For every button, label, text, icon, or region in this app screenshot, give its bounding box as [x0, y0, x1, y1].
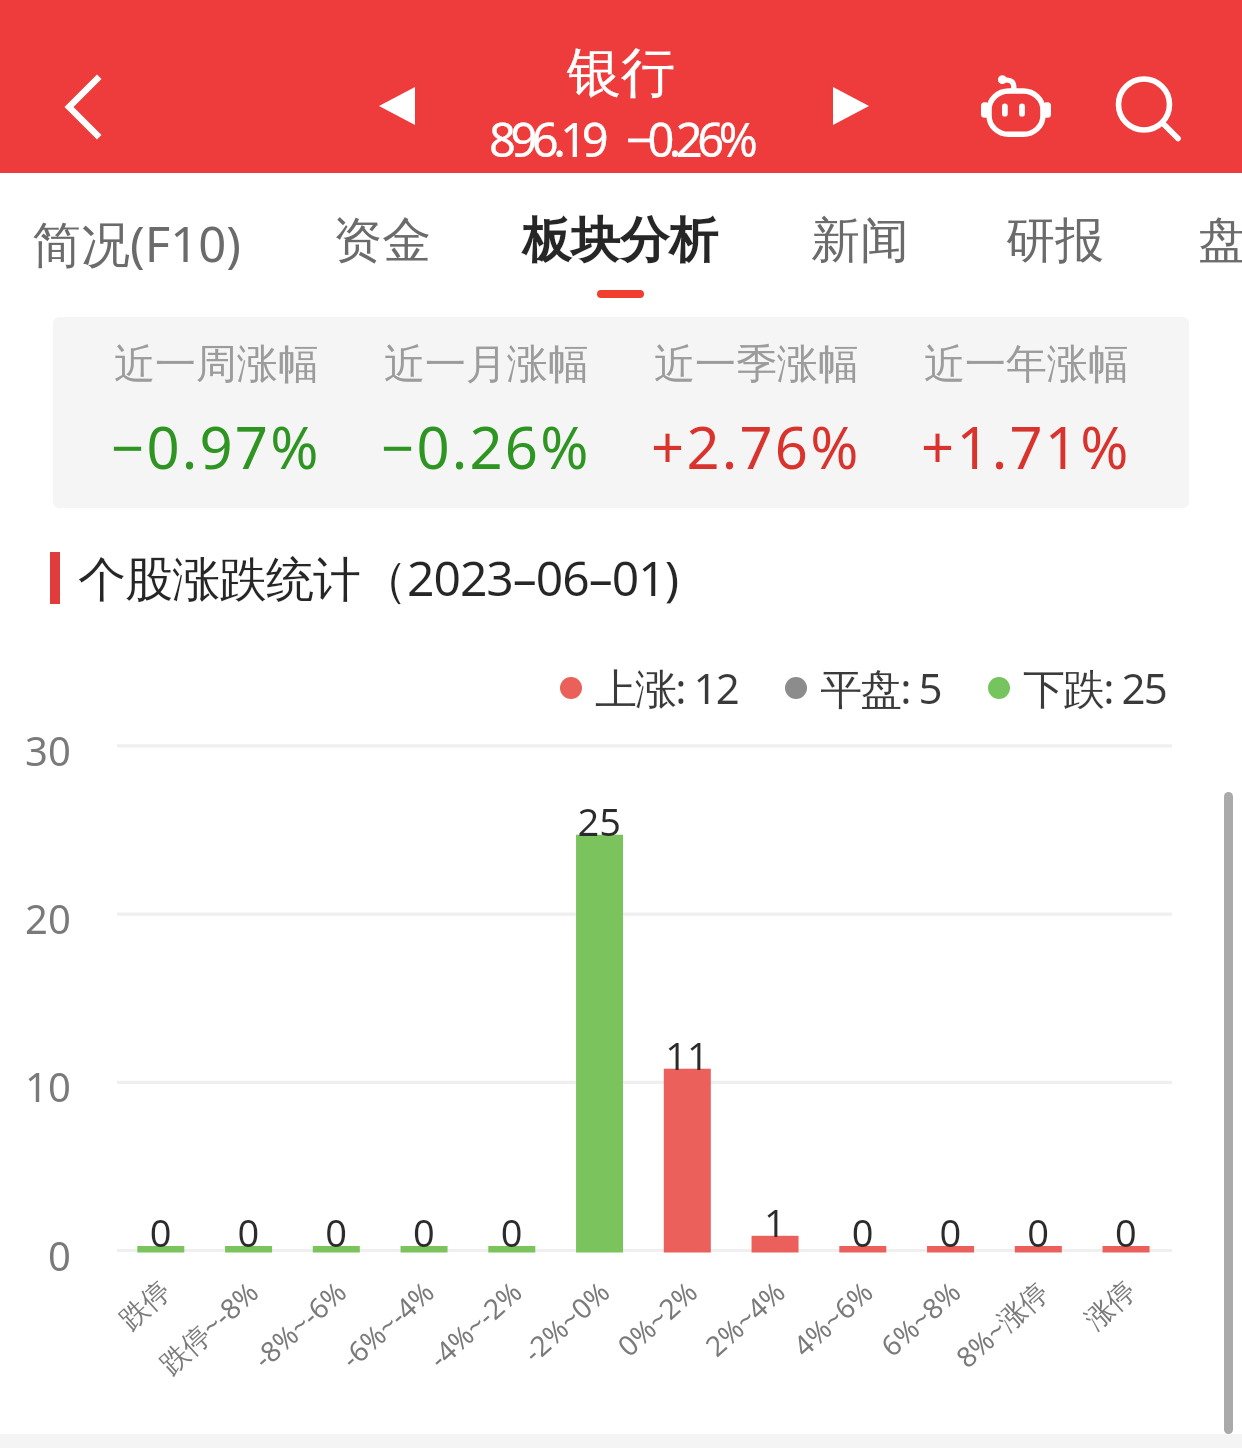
staticText: 平盘: 5 [820, 659, 941, 716]
staticText: 近一月涨幅 [384, 339, 589, 391]
staticText: 近一季涨幅 [654, 339, 859, 391]
button[interactable]: 盘 [1186, 173, 1242, 317]
button[interactable]: 研报 [994, 173, 1116, 317]
staticText: −0.26% [381, 407, 591, 486]
staticText: 近一周涨幅 [114, 339, 319, 391]
button[interactable]: 近一周涨幅 [53, 317, 1189, 508]
staticText: 896.19 [489, 107, 604, 171]
staticText: 近一年涨幅 [924, 339, 1129, 391]
staticText: 简况(F10) [32, 210, 241, 277]
staticText: 资金 [333, 210, 431, 272]
button[interactable]: 上涨: 12 [560, 659, 738, 716]
button[interactable]: 新闻 [799, 173, 921, 317]
button[interactable]: AI assistant [961, 51, 1071, 161]
staticText: +1.71% [921, 407, 1131, 486]
staticText: 银行 [567, 39, 675, 107]
button[interactable]: 简况(F10) [0, 173, 320, 317]
staticText: −0.26% [626, 107, 753, 171]
staticText: 新闻 [811, 210, 909, 272]
staticText: 盘 [1198, 210, 1242, 272]
staticText: 板块分析 [522, 210, 718, 272]
staticText: −0.97% [111, 407, 321, 486]
button[interactable]: Back [28, 52, 138, 162]
button[interactable]: Search [1092, 53, 1202, 163]
staticText: +2.76% [651, 407, 861, 486]
button[interactable]: Previous sector [342, 51, 452, 161]
staticText: 上涨: 12 [595, 659, 738, 716]
button[interactable]: 下跌: 25 [988, 659, 1166, 716]
button[interactable]: Next sector [796, 51, 906, 161]
staticText: 下跌: 25 [1023, 659, 1166, 716]
button[interactable]: 板块分析 [510, 173, 730, 317]
staticText: 研报 [1006, 210, 1104, 272]
button[interactable]: 平盘: 5 [785, 659, 941, 716]
staticText: 个股涨跌统计（2023–06–01) [78, 545, 679, 611]
button[interactable]: 资金 [321, 173, 443, 317]
